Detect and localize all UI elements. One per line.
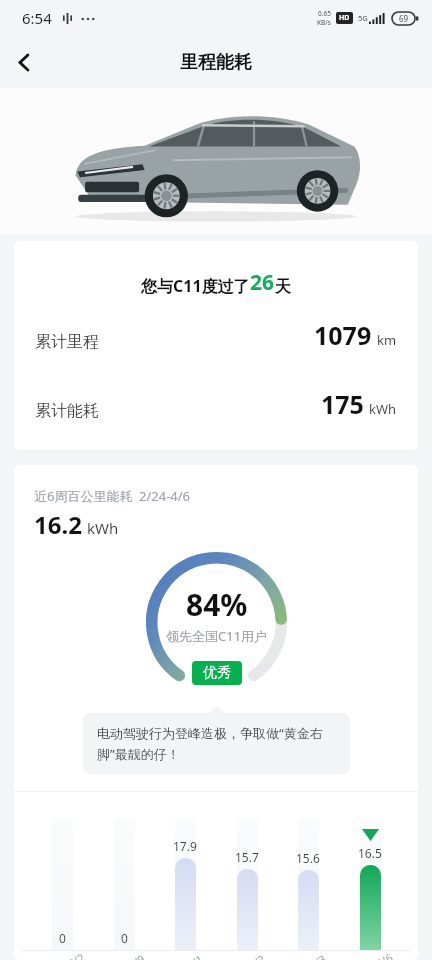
staticText: HD [339,13,350,23]
staticText: 您与C11度过了 [141,275,250,297]
staticText: 2/24-3/2 [42,949,88,960]
button[interactable]: 16.5 [347,818,393,950]
staticText: 2/24-4/6 [139,487,191,505]
staticText: 15.7 [235,849,259,865]
button[interactable]: 15.7 [224,818,270,950]
button[interactable]: 0 [39,818,85,950]
staticText: 6:54 [22,8,52,28]
button[interactable]: 0 [101,818,147,950]
staticText: 0 [121,930,128,946]
button[interactable]: 电动驾驶行为登峰造极，争取做“黄金右脚”最靓的仔！ [83,713,350,774]
staticText: 天 [275,277,291,297]
button[interactable]: 累计里程 [14,318,418,352]
staticText: 1079 [314,318,372,352]
staticText: KB/s [317,18,331,27]
staticText: 15.6 [296,850,320,866]
staticText: 0.65 [318,9,331,18]
staticText: 领先全国C11用户 [166,627,268,645]
staticText: 3/3-3/9 [108,951,147,960]
staticText: 16.2 [34,508,82,541]
staticText: 84% [186,584,248,625]
staticText: 17.9 [173,838,197,854]
staticText: 里程能耗 [180,51,252,74]
staticText: 3/10-3/16 [161,950,215,960]
staticText: km [377,331,397,349]
staticText: 0 [59,930,66,946]
button[interactable]: Back [0,38,48,86]
staticText: 3/31-4/6 [350,949,396,960]
button[interactable]: 17.9 [162,818,208,950]
staticText: 3/17-3/23 [223,950,277,960]
button[interactable]: 优秀 [192,661,242,685]
staticText: 优秀 [203,664,231,682]
staticText: 3/24-3/30 [284,950,338,960]
staticText: 175 [321,387,364,421]
staticText: kWh [369,400,397,418]
staticText: 累计里程 [35,332,99,352]
staticText: 累计能耗 [35,401,99,421]
button[interactable]: 累计能耗 [14,387,418,421]
staticText: 近6周百公里能耗 [34,487,133,505]
staticText: 5G [358,13,368,23]
staticText: kWh [87,518,119,538]
button[interactable]: 15.6 [285,818,331,950]
staticText: 16.5 [358,845,382,861]
staticText: 69 [399,13,409,24]
staticText: 26 [250,268,275,297]
staticText: 电动驾驶行为登峰造极，争取做“黄金右脚”最靓的仔！ [97,724,336,763]
